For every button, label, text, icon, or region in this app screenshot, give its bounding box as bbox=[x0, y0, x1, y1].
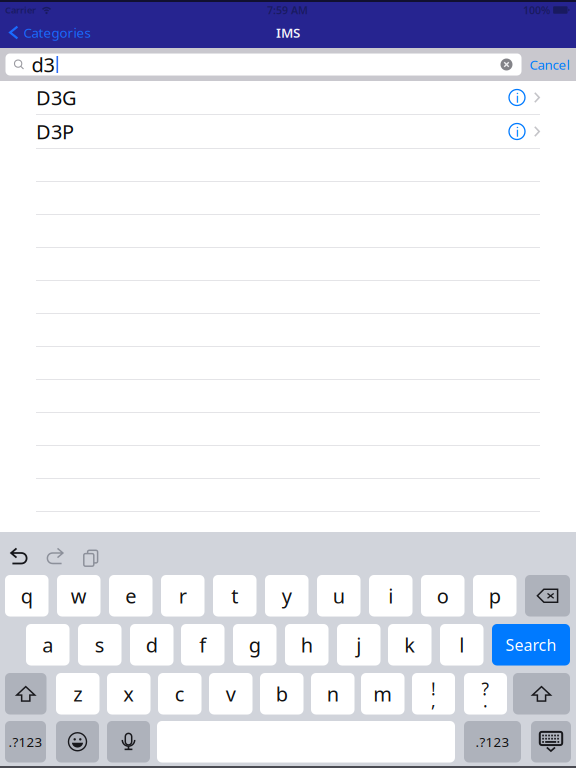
staticText: i bbox=[515, 123, 518, 140]
staticText: r bbox=[179, 582, 187, 609]
staticText: ? bbox=[481, 677, 489, 700]
staticText: c bbox=[175, 680, 185, 707]
button[interactable] bbox=[361, 673, 404, 714]
button[interactable]: Cancel bbox=[529, 52, 569, 76]
staticText: j bbox=[356, 631, 361, 658]
button[interactable]: D3P bbox=[0, 115, 576, 148]
button[interactable] bbox=[130, 624, 173, 665]
button[interactable] bbox=[109, 575, 152, 616]
staticText: w bbox=[71, 582, 87, 609]
staticText: a bbox=[42, 631, 53, 658]
button[interactable] bbox=[464, 673, 507, 714]
staticText: y bbox=[282, 582, 292, 609]
button[interactable] bbox=[369, 575, 412, 616]
button[interactable] bbox=[233, 624, 276, 665]
button[interactable] bbox=[311, 673, 354, 714]
staticText: g bbox=[249, 631, 261, 658]
staticText: e bbox=[125, 582, 136, 609]
staticText: ! bbox=[431, 677, 436, 700]
staticText: b bbox=[276, 680, 288, 707]
button[interactable] bbox=[209, 673, 252, 714]
staticText: t bbox=[231, 582, 238, 609]
staticText: . bbox=[483, 689, 488, 712]
staticText: v bbox=[226, 680, 236, 707]
staticText: u bbox=[333, 582, 345, 609]
staticText: Carrier bbox=[5, 4, 36, 16]
staticText: .?123 bbox=[8, 733, 42, 751]
staticText: Cancel bbox=[529, 56, 569, 73]
button[interactable] bbox=[440, 624, 483, 665]
button[interactable]: Redo bbox=[42, 546, 66, 566]
button[interactable] bbox=[56, 673, 99, 714]
button[interactable]: Emoji bbox=[56, 721, 99, 762]
staticText: 7:59 AM bbox=[267, 3, 308, 17]
button[interactable] bbox=[265, 575, 308, 616]
button[interactable] bbox=[26, 624, 69, 665]
staticText: d bbox=[146, 631, 158, 658]
staticText: q bbox=[21, 582, 33, 609]
button[interactable] bbox=[5, 575, 48, 616]
staticText: m bbox=[373, 680, 392, 707]
staticText: z bbox=[73, 680, 82, 707]
button[interactable] bbox=[57, 575, 100, 616]
button[interactable] bbox=[181, 624, 224, 665]
button[interactable]: Dictation bbox=[107, 721, 150, 762]
staticText: Search bbox=[505, 634, 556, 655]
button[interactable] bbox=[260, 673, 303, 714]
button[interactable]: Delete bbox=[525, 575, 570, 616]
staticText: n bbox=[327, 680, 339, 707]
staticText: p bbox=[489, 582, 501, 609]
staticText: D3G bbox=[36, 84, 77, 111]
staticText: x bbox=[123, 680, 134, 707]
button[interactable] bbox=[464, 721, 521, 762]
button[interactable] bbox=[473, 575, 516, 616]
button[interactable]: Shift bbox=[513, 673, 570, 714]
staticText: o bbox=[437, 582, 449, 609]
staticText: h bbox=[301, 631, 313, 658]
staticText: , bbox=[431, 689, 436, 712]
staticText: s bbox=[95, 631, 105, 658]
button[interactable] bbox=[213, 575, 256, 616]
staticText: d3 bbox=[31, 51, 54, 78]
staticText: f bbox=[199, 631, 206, 658]
staticText: .?123 bbox=[475, 733, 509, 751]
staticText: i bbox=[515, 89, 518, 106]
button[interactable]: D3G bbox=[0, 81, 576, 114]
button[interactable] bbox=[492, 624, 570, 665]
button[interactable] bbox=[421, 575, 464, 616]
button[interactable] bbox=[158, 673, 201, 714]
button[interactable] bbox=[78, 624, 121, 665]
button[interactable]: Categories bbox=[0, 21, 98, 47]
staticText: 100% bbox=[523, 3, 550, 17]
button[interactable] bbox=[5, 721, 46, 762]
button[interactable] bbox=[412, 673, 455, 714]
staticText: D3P bbox=[36, 118, 74, 145]
staticText: l bbox=[459, 631, 464, 658]
button[interactable] bbox=[285, 624, 328, 665]
staticText: Categories bbox=[23, 24, 90, 41]
staticText: i bbox=[388, 582, 393, 609]
button[interactable] bbox=[388, 624, 431, 665]
button[interactable] bbox=[317, 575, 360, 616]
button[interactable] bbox=[337, 624, 380, 665]
staticText: k bbox=[404, 631, 415, 658]
staticText: IMS bbox=[276, 24, 300, 41]
button[interactable] bbox=[161, 575, 204, 616]
button[interactable]: Undo bbox=[8, 546, 32, 566]
button[interactable]: Hide Keyboard bbox=[531, 721, 571, 762]
button[interactable] bbox=[107, 673, 150, 714]
button[interactable]: Paste bbox=[78, 546, 98, 566]
button[interactable]: Shift bbox=[5, 673, 46, 714]
